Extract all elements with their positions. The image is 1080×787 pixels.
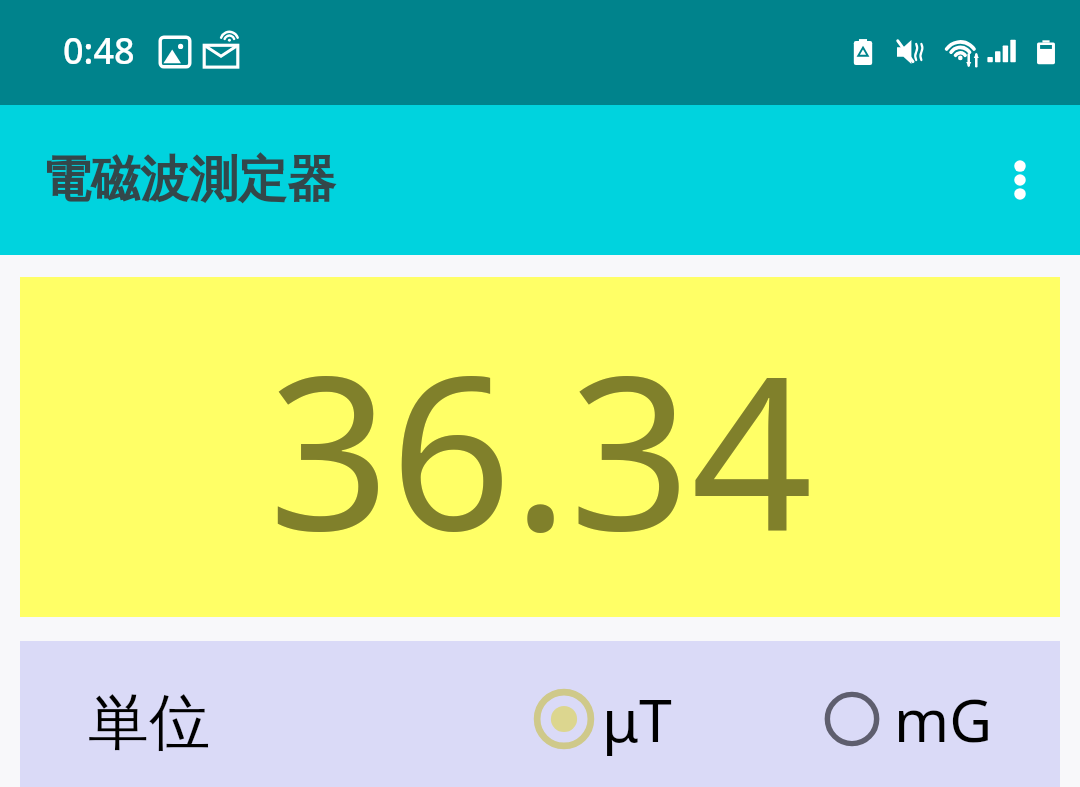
- staticText: μT: [602, 679, 672, 759]
- staticText: 電磁波測定器: [42, 149, 336, 211]
- button[interactable]: 36.34: [20, 277, 1060, 617]
- button[interactable]: More options: [973, 133, 1067, 227]
- button[interactable]: mG: [820, 679, 993, 759]
- button[interactable]: μT: [532, 679, 672, 759]
- staticText: mG: [894, 679, 993, 759]
- staticText: 36.34: [268, 302, 813, 592]
- staticText: 0:48: [63, 26, 135, 75]
- staticText: 単位: [88, 684, 210, 761]
